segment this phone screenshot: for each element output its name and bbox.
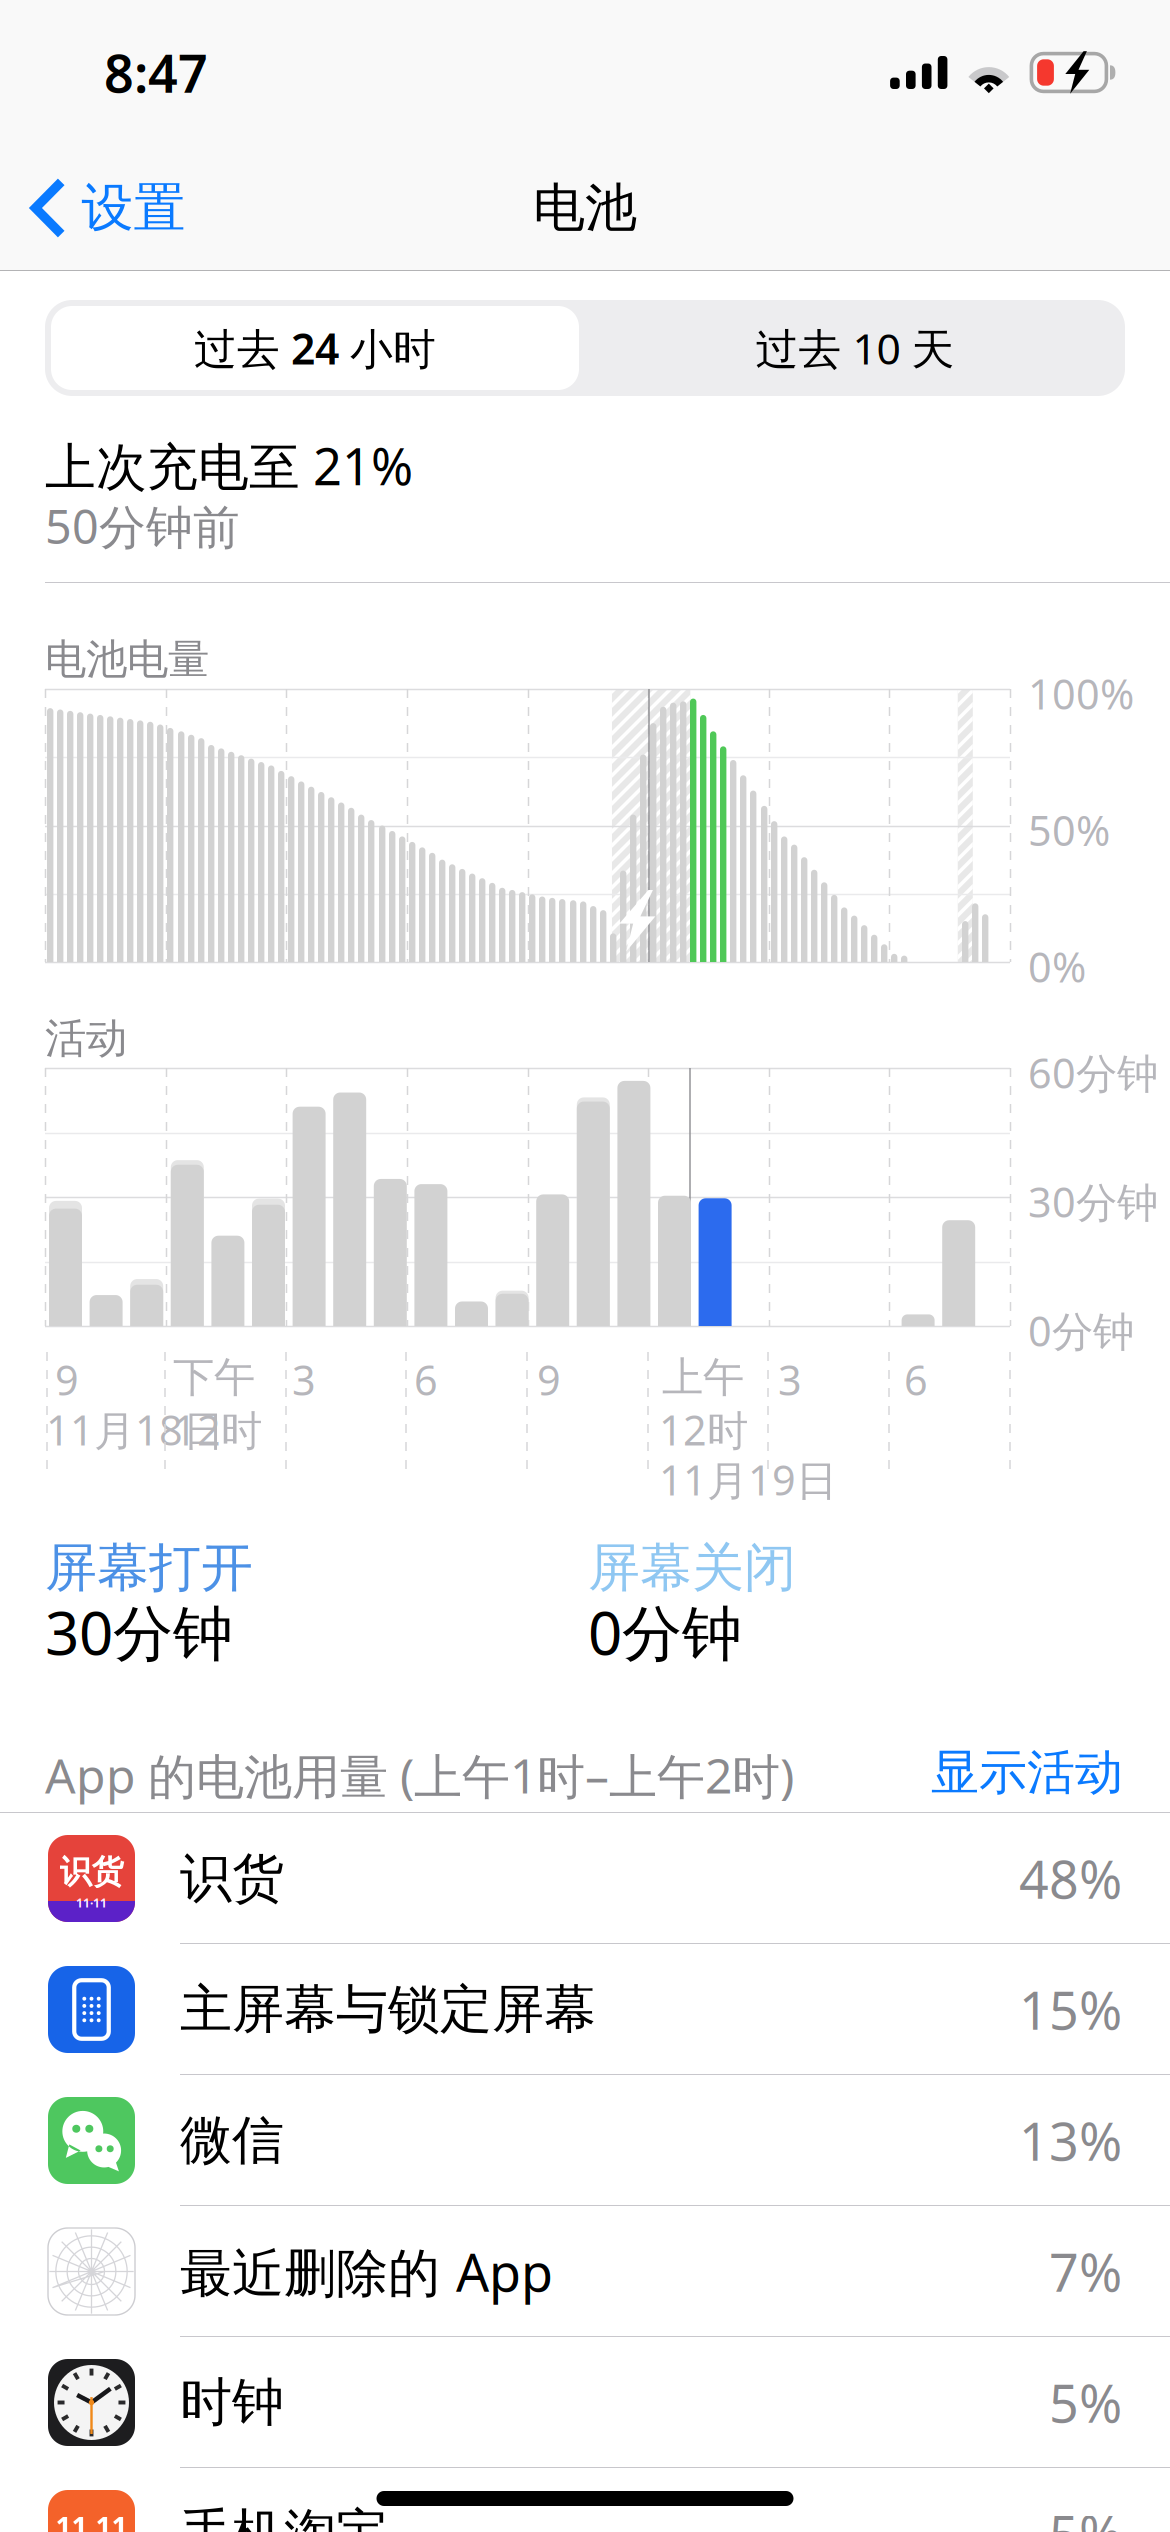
staticText: 电池 [533, 176, 637, 240]
staticText: 15% [1019, 1975, 1122, 2044]
staticText: 11.11 [55, 2508, 127, 2532]
staticText: 设置 [82, 176, 186, 240]
staticText: 30分钟 [45, 1592, 233, 1672]
staticText: 显示活动 [931, 1743, 1123, 1802]
button[interactable]: 微信 [0, 2075, 1170, 2206]
staticText: 60分钟 [1028, 1045, 1158, 1100]
staticText: 9 [537, 1352, 561, 1407]
button[interactable]: 识货 [0, 1813, 1170, 1944]
button[interactable]: 最近删除的 App [0, 2206, 1170, 2337]
staticText: 12时 [173, 1402, 262, 1457]
staticText: 过去 24 小时 [194, 320, 436, 376]
button[interactable]: 显示活动 [923, 1735, 1123, 1810]
staticText: 5% [1049, 2368, 1122, 2437]
staticText: 50% [1028, 802, 1110, 857]
staticText: 上次充电至 21% [45, 432, 413, 499]
staticText: 9 [55, 1352, 79, 1407]
button[interactable]: 过去 24 小时 [45, 300, 585, 396]
staticText: 13% [1019, 2106, 1122, 2175]
staticText: 7% [1049, 2237, 1122, 2306]
staticText: 0分钟 [588, 1592, 742, 1672]
staticText: 0% [1028, 939, 1086, 994]
staticText: 50分钟前 [45, 495, 240, 557]
button[interactable]: 主屏幕与锁定屏幕 [0, 1944, 1170, 2075]
staticText: 0分钟 [1028, 1303, 1134, 1358]
button[interactable]: 过去 10 天 [585, 300, 1125, 396]
staticText: 屏幕打开 [45, 1536, 253, 1600]
staticText: 屏幕关闭 [588, 1536, 796, 1600]
staticText: App 的电池用量 (上午1时–上午2时) [45, 1743, 794, 1807]
staticText: 3 [778, 1352, 802, 1407]
staticText: 识货 [180, 1847, 284, 1910]
staticText: 6 [904, 1352, 928, 1407]
staticText: 11月18日 [46, 1402, 224, 1457]
staticText: 6 [414, 1352, 438, 1407]
staticText: 100% [1028, 666, 1134, 721]
staticText: 8:47 [104, 38, 208, 107]
staticText: 30分钟 [1028, 1174, 1158, 1229]
staticText: 最近删除的 App [180, 2237, 553, 2306]
button[interactable]: 11.11 [0, 2468, 1170, 2532]
staticText: 识货 [59, 1852, 123, 1891]
staticText: 微信 [180, 2109, 284, 2172]
staticText: 3 [292, 1352, 316, 1407]
staticText: 上午 [662, 1352, 744, 1403]
staticText: 电池电量 [45, 634, 209, 685]
staticText: 主屏幕与锁定屏幕 [180, 1978, 596, 2041]
staticText: 5% [1049, 2499, 1122, 2532]
staticText: 活动 [45, 1013, 127, 1064]
staticText: 11·11 [76, 1895, 107, 1911]
button[interactable]: 时钟 [0, 2337, 1170, 2468]
staticText: 时钟 [180, 2371, 284, 2434]
staticText: 手机淘宝 [180, 2502, 388, 2532]
staticText: 过去 10 天 [755, 320, 954, 376]
staticText: 11月19日 [659, 1452, 837, 1507]
staticText: 下午 [173, 1352, 255, 1403]
staticText: 12时 [659, 1402, 748, 1457]
button[interactable]: 设置 [6, 155, 210, 261]
staticText: 48% [1019, 1844, 1122, 1913]
